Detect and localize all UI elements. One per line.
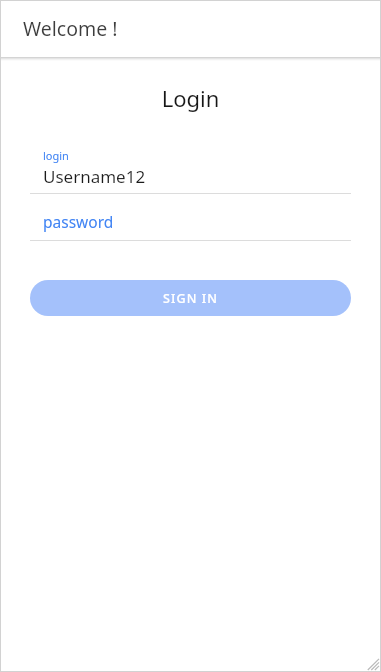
staticText: Welcome ! <box>23 15 118 42</box>
staticText: SIGN IN <box>163 290 219 307</box>
button[interactable]: SIGN IN <box>30 280 351 316</box>
staticText: login <box>43 148 69 163</box>
staticText: password <box>43 211 114 232</box>
staticText: Login <box>0 83 381 113</box>
button[interactable]: login <box>30 148 351 194</box>
staticText: Username12 <box>43 165 146 188</box>
button[interactable]: password <box>30 202 351 241</box>
other: Resize window <box>363 654 379 670</box>
